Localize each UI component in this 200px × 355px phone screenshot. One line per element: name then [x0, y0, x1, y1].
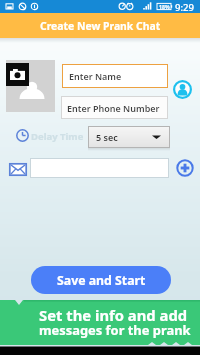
staticText: Enter Name: [69, 70, 122, 82]
button[interactable]: Add message: [176, 159, 194, 177]
staticText: 9:29: [175, 1, 195, 14]
staticText: 5 sec: [96, 131, 118, 143]
staticText: messages for the prank: [39, 321, 191, 339]
button[interactable]: Save and Start: [31, 266, 171, 294]
staticText: 18%: [159, 3, 170, 10]
staticText: Delay Time: [31, 130, 84, 143]
button[interactable]: 5 sec: [88, 126, 170, 148]
staticText: Set the info and add: [39, 305, 188, 325]
button[interactable]: Pick contact: [173, 80, 192, 99]
button[interactable]: Message: [9, 163, 27, 176]
staticText: Save and Start: [57, 272, 146, 289]
button[interactable]: Choose profile photo: [6, 60, 55, 112]
button[interactable]: Enter Name: [62, 64, 168, 88]
button[interactable]: [30, 158, 169, 178]
staticText: Create New Prank Chat: [40, 19, 161, 33]
button[interactable]: Enter Phone Number: [61, 96, 168, 119]
staticText: Enter Phone Number: [67, 102, 160, 114]
